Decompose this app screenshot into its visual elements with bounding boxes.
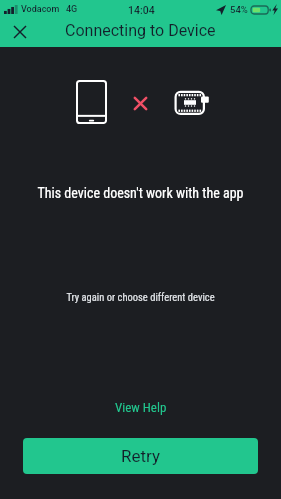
- staticText: 54%: [230, 4, 248, 15]
- staticText: 4G: [66, 4, 78, 15]
- staticText: Retry: [121, 446, 161, 466]
- staticText: Try again or choose different device: [0, 291, 281, 303]
- staticText: Connecting to Device: [65, 21, 216, 40]
- button[interactable]: Close: [8, 20, 32, 44]
- staticText: Vodacom: [21, 4, 60, 15]
- staticText: 14:04: [128, 4, 155, 16]
- button[interactable]: Retry: [23, 438, 258, 474]
- staticText: This device doesn't work with the app: [0, 185, 281, 201]
- button[interactable]: View Help: [101, 395, 181, 420]
